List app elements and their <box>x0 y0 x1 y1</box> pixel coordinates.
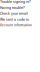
staticText: Account information <box>0 23 32 27</box>
staticText: Trouble signing in? <box>0 0 31 4</box>
staticText: Check your email <box>0 12 28 16</box>
staticText: We sent a code to <box>0 18 29 21</box>
staticText: Having trouble? <box>0 6 25 10</box>
